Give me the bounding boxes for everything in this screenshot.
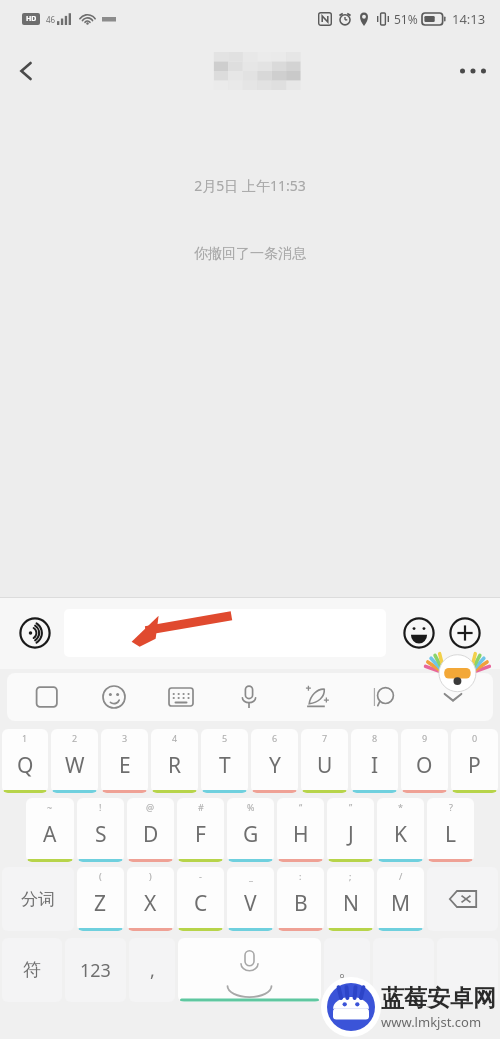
button[interactable]: ~ [26,798,74,862]
button[interactable]: 0 [451,729,498,793]
staticText: U [317,751,333,780]
button[interactable]: % [227,798,274,862]
staticText: L [445,820,457,849]
button[interactable]: _ [227,867,274,931]
button[interactable]: 4 [151,729,198,793]
staticText: www.lmkjst.com [381,1013,482,1031]
button[interactable] [437,938,498,1002]
staticText: 你撤回了一条消息 [194,245,306,263]
staticText: H [293,820,309,849]
staticText: 蓝莓安卓网 [381,984,496,1013]
staticText: M [391,889,411,918]
button[interactable]: “ [277,798,324,862]
staticText: _ [249,870,253,882]
staticText: 。 [338,959,356,982]
staticText: % [247,801,255,813]
button[interactable]: : [277,867,324,931]
staticText: ; [349,870,352,882]
button[interactable]: @ [127,798,174,862]
staticText: 符 [23,959,41,982]
button[interactable]: Emoji panel [80,673,147,721]
button[interactable]: * [377,798,424,862]
button[interactable]: Emoji [396,610,442,656]
staticText: V [244,889,257,918]
staticText: J [348,820,354,849]
staticText: 2 [72,732,78,744]
button[interactable]: 。 [324,938,370,1002]
button[interactable]: 1 [2,729,48,793]
button[interactable]: More options [446,44,500,98]
staticText: 3 [122,732,128,744]
staticText: 4 [172,732,178,744]
staticText: 51% [394,11,418,27]
button[interactable]: , [129,938,175,1002]
button[interactable]: # [177,798,224,862]
staticText: 1 [22,732,28,744]
button[interactable]: Space [178,938,321,1002]
button[interactable]: ( [77,867,124,931]
button[interactable]: Collapse [419,673,487,721]
button[interactable]: Handwriting [283,673,351,721]
staticText: N [343,889,359,918]
button[interactable]: More [442,610,488,656]
button[interactable]: - [177,867,224,931]
button[interactable]: ) [127,867,174,931]
staticText: 6 [272,732,278,744]
button[interactable]: Backspace [427,867,498,931]
button[interactable]: Back [0,44,54,98]
button[interactable]: 符 [2,938,62,1002]
button[interactable]: 3 [101,729,148,793]
button[interactable]: 2 [51,729,98,793]
staticText: 123 [80,958,111,983]
staticText: ! [99,801,102,813]
button[interactable]: 9 [401,729,448,793]
staticText: HD [26,14,37,24]
button[interactable]: Search [351,673,419,721]
button[interactable]: 7 [301,729,348,793]
staticText: G [243,820,259,849]
button[interactable]: Voice [215,673,283,721]
button[interactable]: ” [327,798,374,862]
staticText: # [198,801,204,813]
button[interactable]: / [377,867,424,931]
button[interactable]: ! [77,798,124,862]
button[interactable]: 123 [65,938,126,1002]
staticText: * [398,801,403,813]
staticText: S [95,820,107,849]
staticText: K [394,820,407,849]
staticText: F [195,820,206,849]
button[interactable]: ? [427,798,474,862]
staticText: Y [269,751,281,780]
button[interactable]: Sogou input [13,673,80,721]
staticText: A [43,820,57,849]
button[interactable]: 5 [201,729,248,793]
button[interactable]: 分词 [2,867,74,931]
button[interactable]: ; [327,867,374,931]
staticText: 7 [322,732,328,744]
staticText: W [65,751,85,780]
staticText: O [416,751,433,780]
staticText: Z [94,889,107,918]
button[interactable]: 6 [251,729,298,793]
staticText: P [468,751,481,780]
staticText: “ [299,801,303,813]
button[interactable] [64,609,386,657]
button[interactable]: 8 [351,729,398,793]
staticText: : [299,870,302,882]
button[interactable] [373,938,434,1002]
staticText: D [143,820,159,849]
button[interactable]: Voice input [12,610,58,656]
staticText: ( [99,870,102,882]
staticText: 0 [472,732,478,744]
staticText: @ [146,801,155,813]
staticText: 分词 [21,889,55,910]
staticText: 14:13 [452,10,486,28]
button[interactable]: Keyboard layout [147,673,215,721]
staticText: , [150,958,155,983]
staticText: 8 [372,732,378,744]
staticText: / [399,870,403,882]
staticText: E [119,751,131,780]
staticText: ) [149,870,152,882]
staticText: - [199,870,202,882]
staticText: ” [349,801,353,813]
